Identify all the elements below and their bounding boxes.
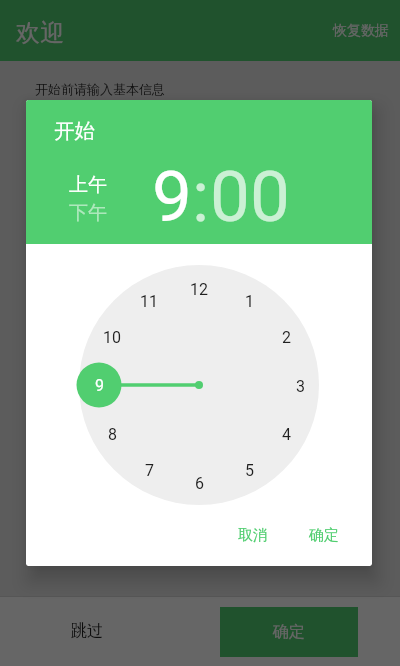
staticText: 取消 <box>238 526 268 545</box>
button[interactable]: 3 <box>284 375 316 397</box>
staticText: 9 <box>152 155 192 238</box>
staticText: 3 <box>296 377 305 396</box>
staticText: 开始前请输入基本信息 <box>35 81 165 97</box>
staticText: 10 <box>103 328 121 347</box>
button[interactable]: 4 <box>270 423 302 445</box>
staticText: 跳过 <box>71 621 103 641</box>
staticText: 5 <box>245 461 254 480</box>
button[interactable]: 8 <box>96 423 128 445</box>
staticText: 上午 <box>69 173 107 197</box>
staticText: 00 <box>210 155 290 238</box>
button[interactable]: 6 <box>183 472 215 494</box>
button[interactable]: 跳过 <box>55 611 119 651</box>
button[interactable]: 上午 <box>69 173 107 197</box>
staticText: 11 <box>140 292 158 311</box>
staticText: 1 <box>245 292 254 311</box>
staticText: 8 <box>108 425 117 444</box>
staticText: 恢复数据 <box>333 22 389 40</box>
button[interactable]: 5 <box>233 459 265 481</box>
button[interactable]: 确定 <box>220 607 358 657</box>
button[interactable]: 取消 <box>230 518 276 553</box>
staticText: 6 <box>195 474 204 493</box>
staticText: 开始 <box>54 118 95 144</box>
staticText: 9 <box>95 376 104 395</box>
button[interactable]: 1 <box>233 290 265 312</box>
button[interactable]: 10 <box>96 326 128 348</box>
staticText: 4 <box>282 425 291 444</box>
staticText: 确定 <box>273 622 305 642</box>
button[interactable]: 7 <box>133 459 165 481</box>
button[interactable]: 确定 <box>301 518 347 553</box>
staticText: 欢迎 <box>16 18 64 48</box>
button[interactable]: 12 <box>183 278 215 300</box>
staticText: 确定 <box>309 526 339 545</box>
staticText: : <box>192 155 210 238</box>
button[interactable]: 9 <box>83 374 115 396</box>
button[interactable]: 恢复数据 <box>319 12 400 50</box>
button[interactable]: 2 <box>270 326 302 348</box>
button[interactable]: 00 <box>210 155 290 238</box>
staticText: 7 <box>145 461 154 480</box>
staticText: 12 <box>190 280 208 299</box>
button[interactable]: 11 <box>133 290 165 312</box>
staticText: 2 <box>282 328 291 347</box>
staticText: 下午 <box>69 201 107 225</box>
other: Clock dial, 9 o'clock selected <box>79 265 319 505</box>
button[interactable]: 9 <box>152 155 192 238</box>
button[interactable]: 下午 <box>69 201 107 225</box>
